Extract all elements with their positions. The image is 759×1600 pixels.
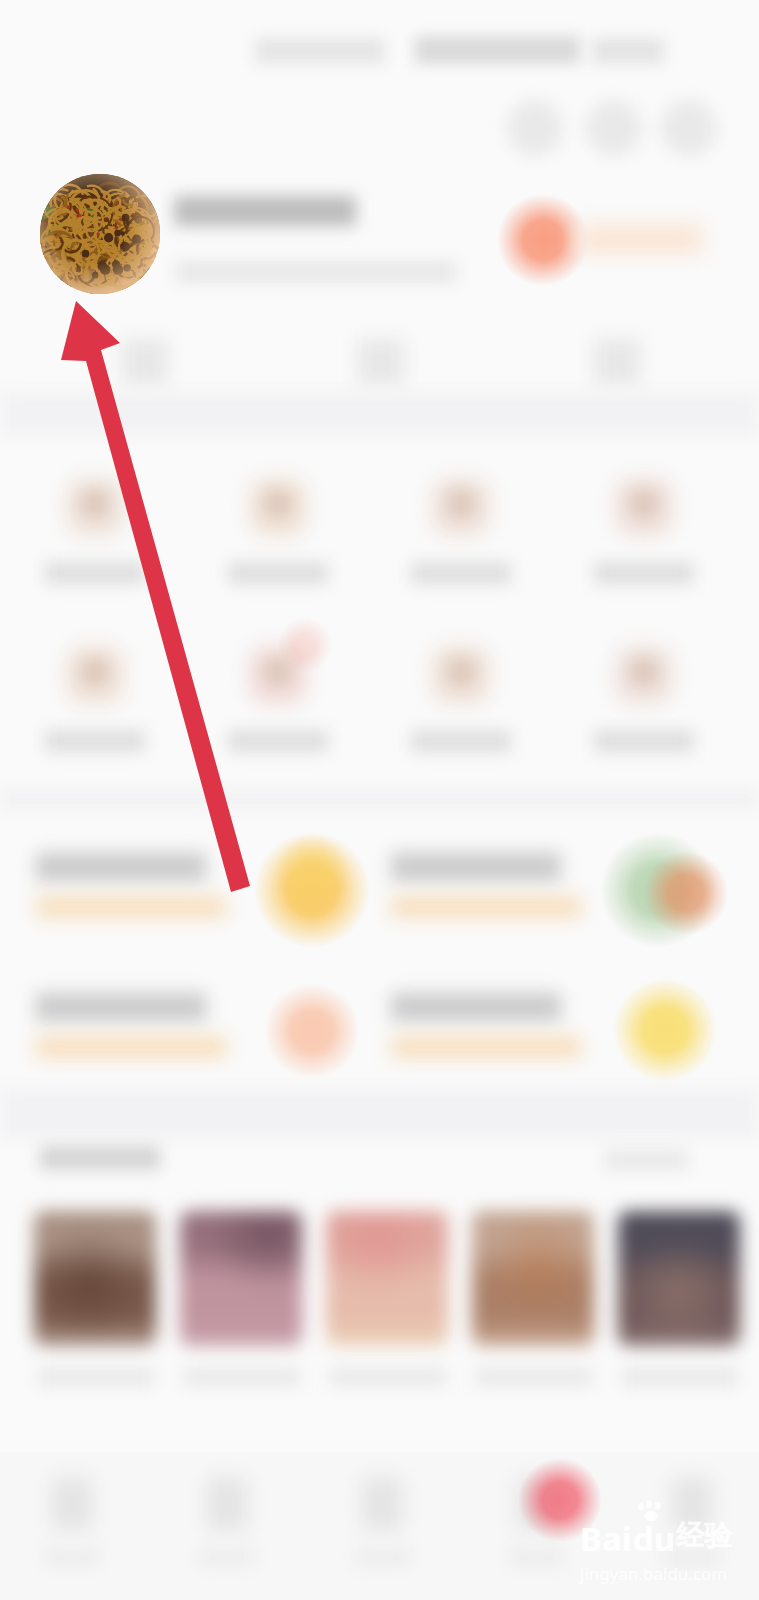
button[interactable]: Category 5	[25, 628, 165, 780]
staticText: Bai	[580, 1516, 632, 1561]
button[interactable]: Home	[0, 1452, 144, 1600]
button[interactable]: Profile avatar	[40, 174, 160, 294]
button[interactable]: Promotion 4	[371, 963, 723, 1099]
button[interactable]: Coupons	[537, 320, 697, 404]
button[interactable]: Recommended item 3	[320, 1202, 456, 1400]
button[interactable]: Recommended item 5	[612, 1202, 748, 1400]
button[interactable]: Favourites	[301, 320, 461, 404]
button[interactable]: Scan	[580, 94, 648, 162]
button[interactable]: Promotion 1	[16, 823, 368, 959]
button[interactable]: Category 3	[391, 460, 531, 612]
button[interactable]: Category 8	[574, 628, 714, 780]
button[interactable]: Discover	[310, 1452, 454, 1600]
button[interactable]: Recommended item 2	[174, 1202, 310, 1400]
button[interactable]: Promotion 3	[16, 963, 368, 1099]
button[interactable]: Search	[501, 94, 569, 162]
button[interactable]: Recommended item 1	[28, 1202, 164, 1400]
button[interactable]: Me	[620, 1452, 759, 1600]
button[interactable]: Category 7	[391, 628, 531, 780]
button[interactable]: Recommended item 4	[466, 1202, 602, 1400]
button[interactable]: Category 2	[208, 460, 348, 612]
button[interactable]: See all	[596, 1138, 716, 1184]
button[interactable]: Orders	[155, 1452, 299, 1600]
button[interactable]: More	[655, 94, 723, 162]
staticText: 经验	[676, 1518, 732, 1553]
button[interactable]: Category 6	[208, 628, 348, 780]
button[interactable]: Messages	[465, 1452, 609, 1600]
button[interactable]: Membership	[496, 196, 712, 286]
button[interactable]: Orders	[65, 320, 225, 404]
button[interactable]: Promotion 2	[371, 823, 723, 959]
staticText: du	[633, 1516, 676, 1561]
button[interactable]: Category 4	[574, 460, 714, 612]
button[interactable]: Category 1	[25, 460, 165, 612]
button[interactable]	[168, 180, 488, 298]
